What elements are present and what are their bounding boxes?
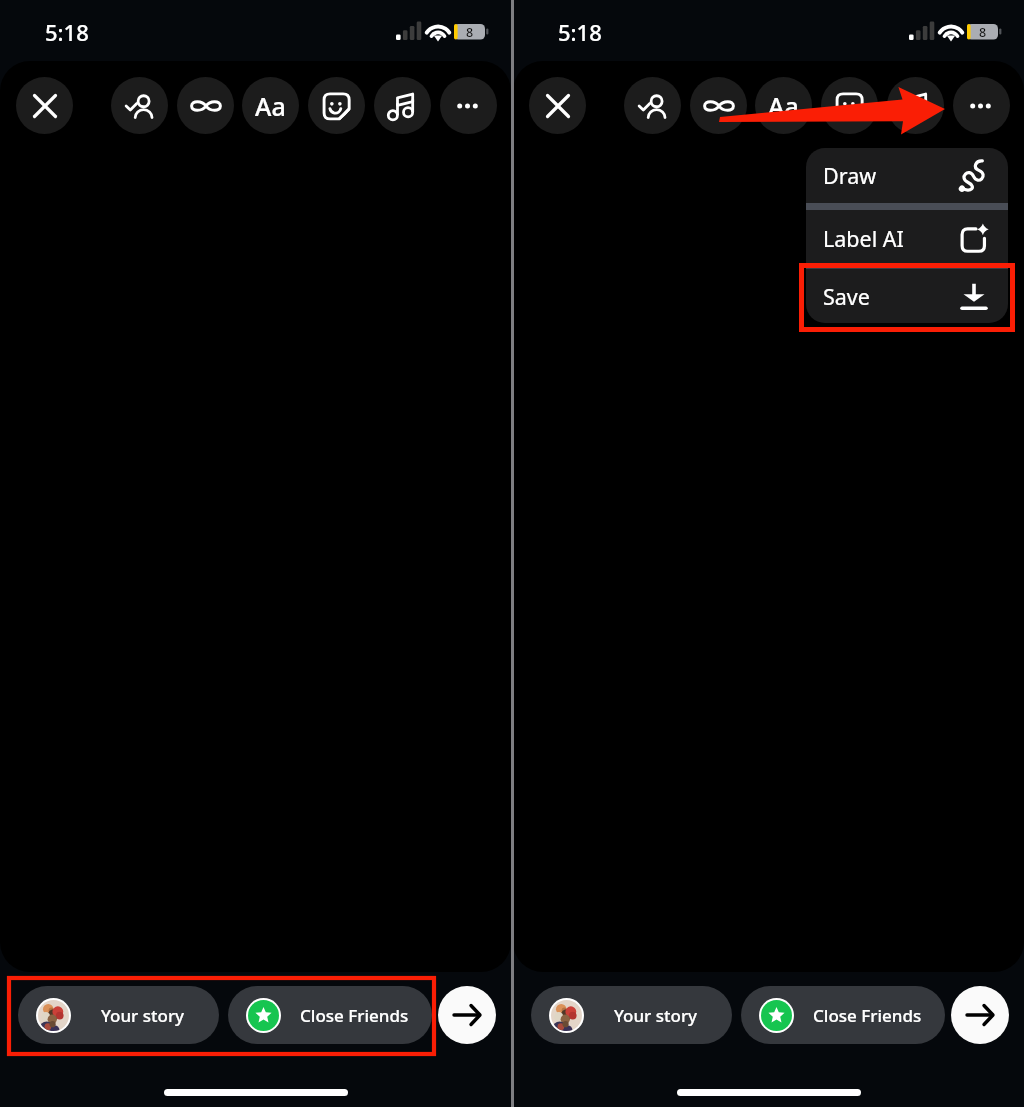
button[interactable]: Send	[438, 986, 496, 1044]
staticText: Save	[823, 282, 870, 311]
button[interactable]: Stickers	[308, 77, 365, 134]
button[interactable]: Stickers	[821, 77, 878, 134]
staticText: 8	[979, 24, 987, 40]
button[interactable]: Close	[529, 77, 586, 134]
staticText: Close Friends	[300, 1004, 409, 1027]
button[interactable]: Boomerang	[690, 77, 747, 134]
staticText: 5:18	[558, 17, 602, 47]
staticText: Your story	[614, 1004, 698, 1027]
button[interactable]: Music	[887, 77, 944, 134]
button[interactable]: Save	[806, 269, 1008, 323]
staticText: Your story	[101, 1004, 185, 1027]
button[interactable]: Label AI	[806, 210, 1008, 267]
staticText: Aa	[768, 89, 799, 123]
button[interactable]: Your story	[18, 986, 219, 1044]
staticText: 5:18	[45, 17, 89, 47]
button[interactable]: Tag people	[624, 77, 681, 134]
staticText: Label AI	[823, 224, 904, 253]
button[interactable]: Text	[755, 77, 812, 134]
button[interactable]: Text	[242, 77, 299, 134]
button[interactable]: Close	[16, 77, 73, 134]
staticText: Aa	[255, 89, 286, 123]
staticText: Close Friends	[813, 1004, 922, 1027]
staticText: 8	[466, 24, 474, 40]
staticText: Draw	[823, 161, 877, 190]
button[interactable]: Music	[374, 77, 431, 134]
button[interactable]: Close Friends	[228, 986, 432, 1044]
button[interactable]: Boomerang	[177, 77, 234, 134]
button[interactable]: Draw	[806, 148, 1008, 203]
button[interactable]: Your story	[531, 986, 732, 1044]
button[interactable]: Tag people	[111, 77, 168, 134]
button[interactable]: More options	[440, 77, 497, 134]
button[interactable]: Send	[951, 986, 1009, 1044]
button[interactable]: More options	[953, 77, 1010, 134]
button[interactable]: Close Friends	[741, 986, 945, 1044]
